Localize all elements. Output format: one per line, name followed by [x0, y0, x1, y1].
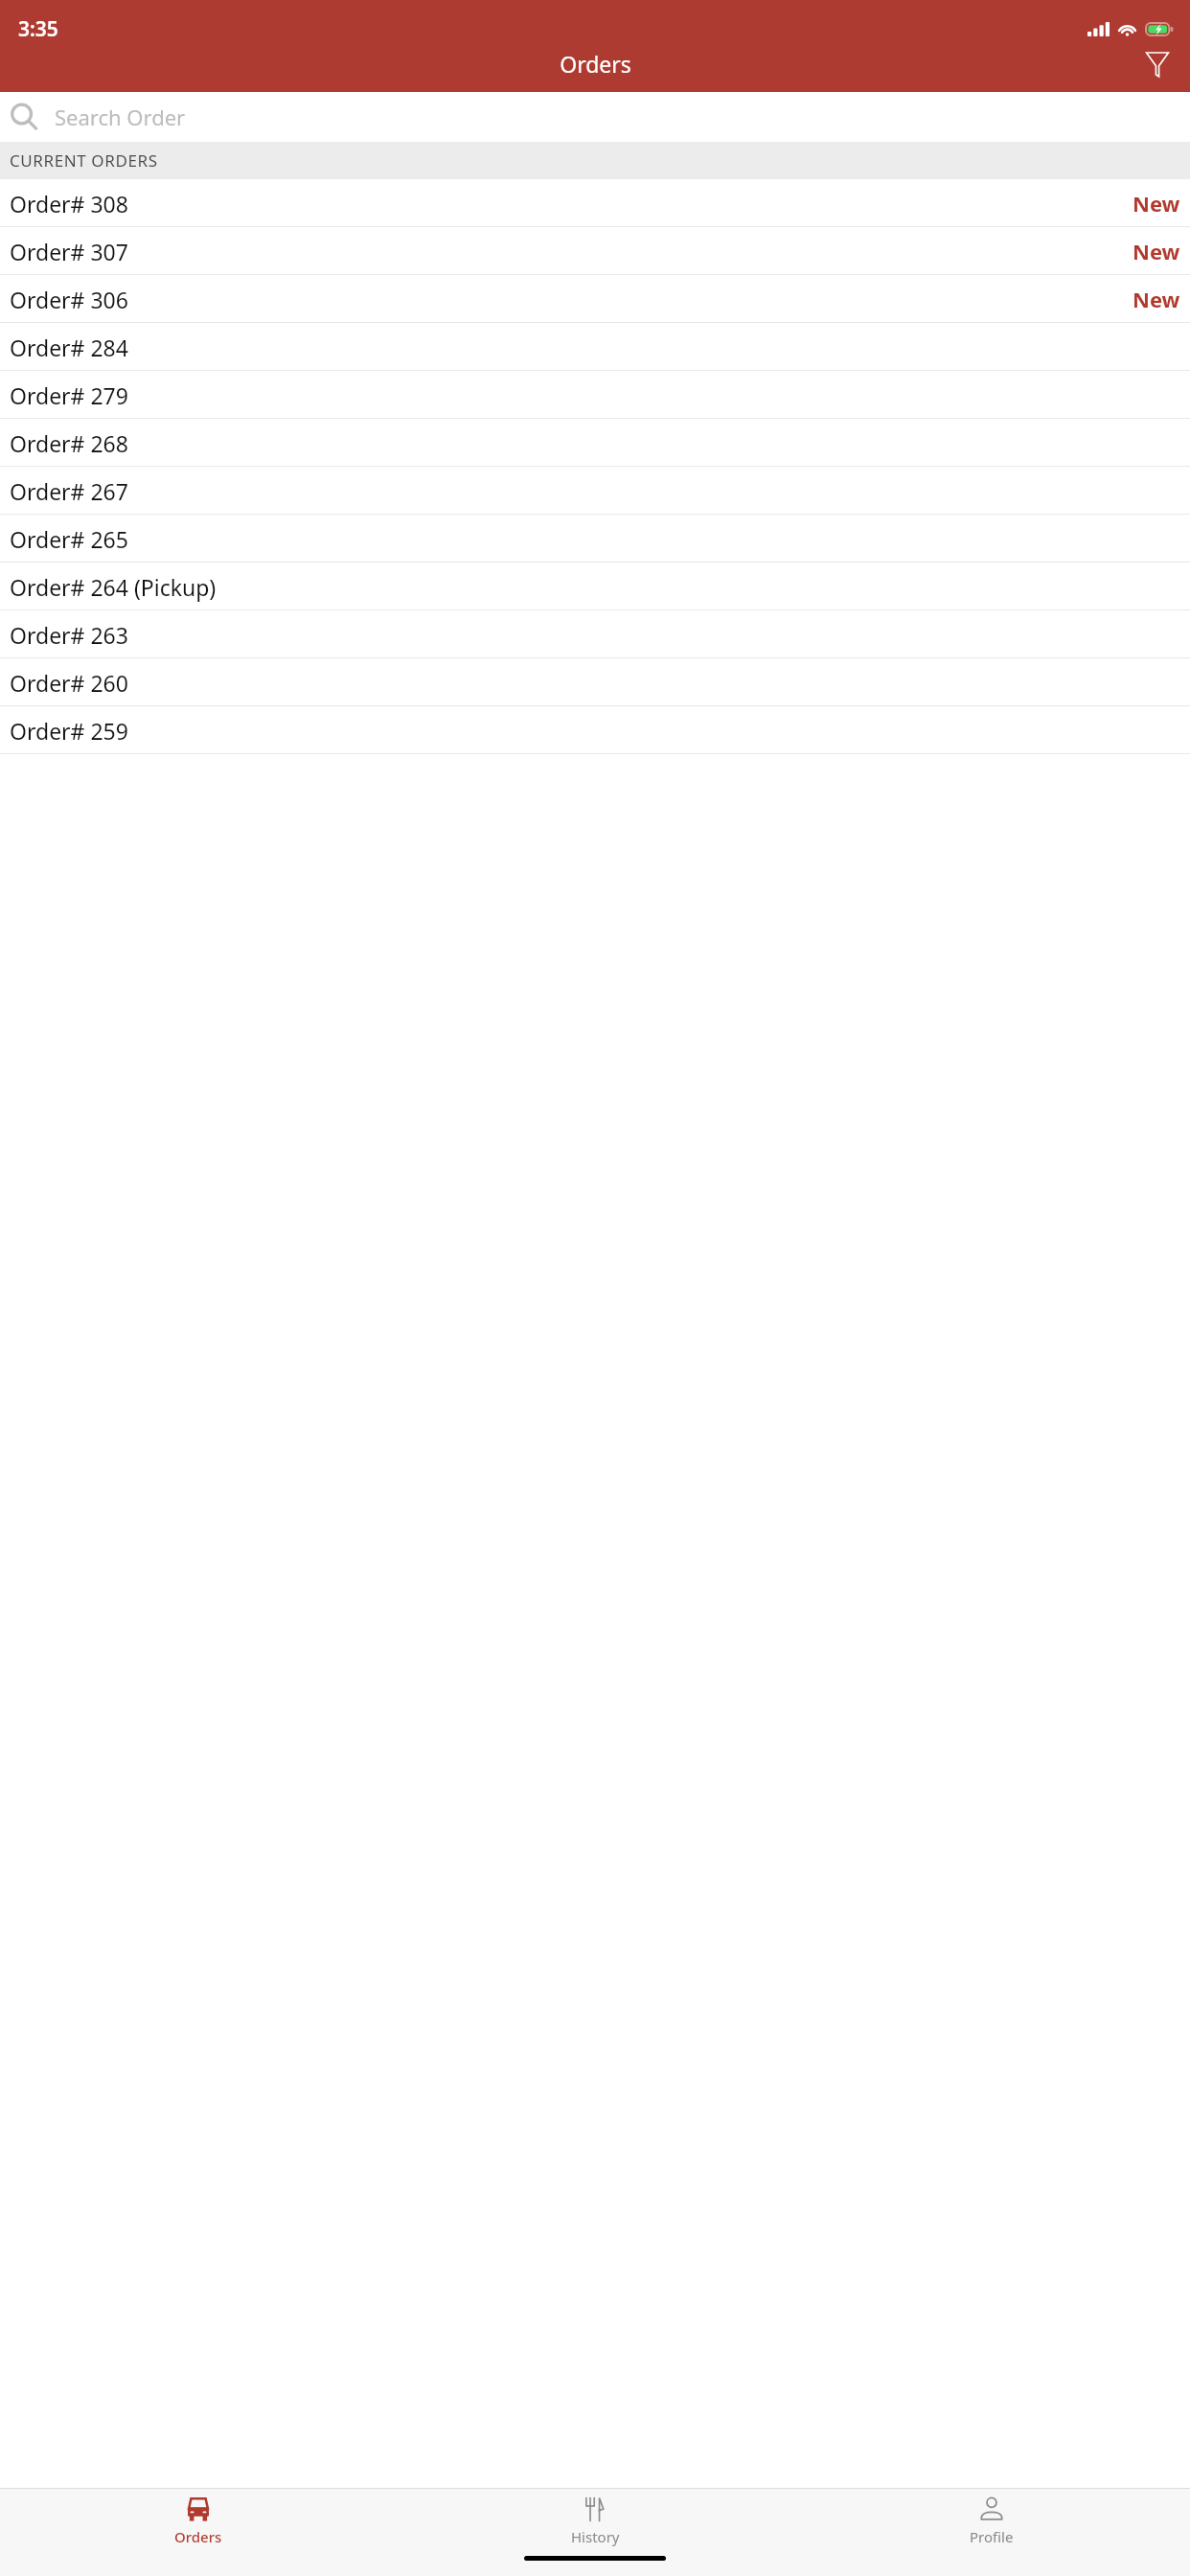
- button[interactable]: Order# 268: [0, 419, 1190, 467]
- staticText: Orders: [174, 2527, 222, 2546]
- staticText: Order# 307: [10, 237, 128, 266]
- staticText: New: [1133, 285, 1180, 313]
- staticText: Order# 306: [10, 285, 128, 314]
- staticText: History: [571, 2527, 620, 2546]
- button[interactable]: Search Order: [0, 92, 1190, 142]
- button[interactable]: Order# 267: [0, 467, 1190, 515]
- button[interactable]: Order# 259: [0, 706, 1190, 754]
- button[interactable]: Order# 264 (Pickup): [0, 563, 1190, 610]
- staticText: 3:35: [18, 15, 58, 43]
- staticText: Order# 284: [10, 333, 128, 362]
- button[interactable]: Order# 284: [0, 323, 1190, 371]
- button[interactable]: Order# 279: [0, 371, 1190, 419]
- staticText: Order# 259: [10, 716, 128, 746]
- staticText: CURRENT ORDERS: [10, 149, 158, 172]
- button[interactable]: Order# 265: [0, 515, 1190, 563]
- staticText: New: [1133, 189, 1180, 218]
- staticText: New: [1133, 237, 1180, 265]
- staticText: Order# 265: [10, 524, 128, 554]
- staticText: Order# 268: [10, 428, 128, 458]
- staticText: Order# 279: [10, 380, 128, 410]
- button[interactable]: Filter orders: [1131, 37, 1184, 91]
- button[interactable]: Order# 307: [0, 227, 1190, 275]
- staticText: Order# 260: [10, 668, 128, 698]
- staticText: Order# 308: [10, 189, 128, 218]
- button[interactable]: Order# 306: [0, 275, 1190, 323]
- button[interactable]: Order# 260: [0, 658, 1190, 706]
- button[interactable]: Profile: [793, 2489, 1190, 2548]
- staticText: Orders: [560, 49, 631, 79]
- staticText: Order# 267: [10, 476, 128, 506]
- button[interactable]: Order# 308: [0, 179, 1190, 227]
- button[interactable]: History: [397, 2489, 793, 2548]
- button[interactable]: Orders: [0, 2489, 397, 2548]
- staticText: Order# 263: [10, 620, 128, 650]
- button[interactable]: Order# 263: [0, 610, 1190, 658]
- staticText: Search Order: [55, 103, 186, 131]
- staticText: Profile: [970, 2527, 1014, 2546]
- staticText: Order# 264 (Pickup): [10, 572, 217, 602]
